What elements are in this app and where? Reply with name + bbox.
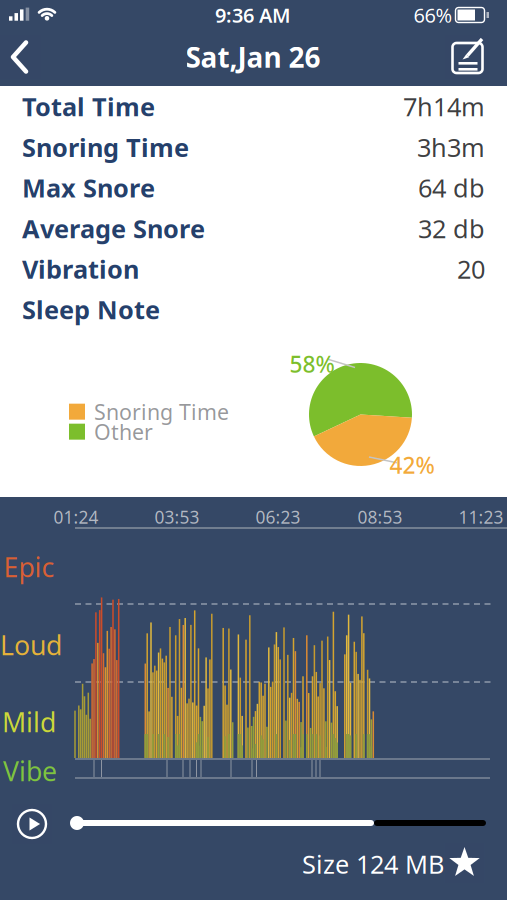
staticText: Mild bbox=[2, 704, 56, 740]
staticText: Average Snore bbox=[22, 211, 205, 245]
staticText: 01:24 bbox=[53, 505, 98, 528]
staticText: 11:23 bbox=[458, 505, 503, 528]
staticText: Total Time bbox=[22, 90, 155, 123]
staticText: Sleep Note bbox=[22, 293, 160, 326]
staticText: 20 bbox=[457, 252, 485, 286]
staticText: Sat,Jan 26 bbox=[185, 38, 320, 76]
staticText: 03:53 bbox=[154, 505, 199, 528]
staticText: 66% bbox=[413, 2, 452, 28]
staticText: Loud bbox=[0, 627, 62, 663]
staticText: 08:53 bbox=[357, 505, 402, 528]
staticText: 58% bbox=[289, 349, 334, 379]
button[interactable] bbox=[12, 804, 52, 844]
staticText: Snoring Time bbox=[22, 130, 189, 164]
staticText: Max Snore bbox=[22, 171, 155, 204]
staticText: 32 db bbox=[418, 211, 485, 245]
staticText: 9:36 AM bbox=[215, 2, 291, 28]
staticText: 06:23 bbox=[255, 505, 300, 528]
staticText: Vibration bbox=[22, 252, 139, 286]
staticText: Epic bbox=[3, 549, 54, 585]
staticText: 42% bbox=[389, 450, 434, 480]
staticText: 7h14m bbox=[403, 90, 485, 123]
button[interactable] bbox=[444, 843, 484, 883]
button[interactable] bbox=[0, 35, 41, 79]
staticText: 64 db bbox=[418, 171, 485, 204]
staticText: Other bbox=[94, 417, 153, 446]
staticText: Size 124 MB bbox=[302, 847, 444, 881]
staticText: Snoring Time bbox=[94, 397, 229, 426]
staticText: 3h3m bbox=[417, 130, 485, 164]
button[interactable] bbox=[445, 35, 489, 79]
staticText: Vibe bbox=[3, 753, 57, 789]
